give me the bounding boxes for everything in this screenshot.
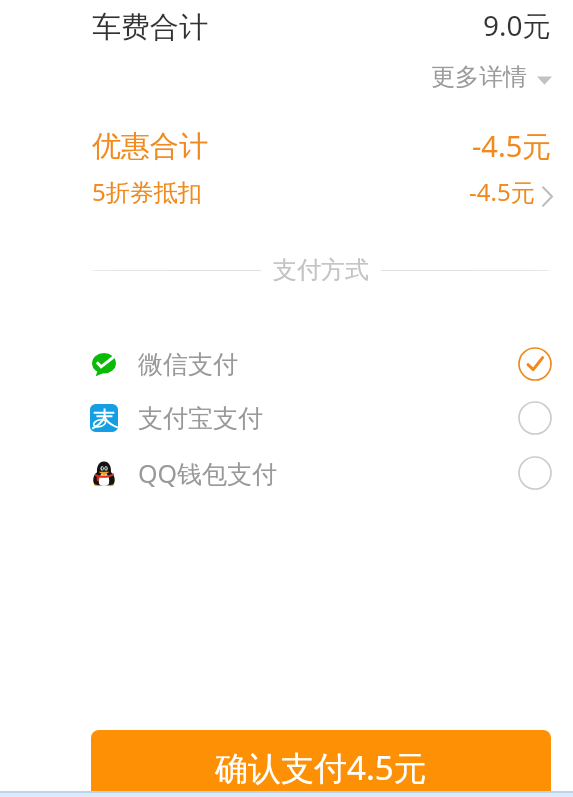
button[interactable]: QQ Wallet: [0, 446, 573, 500]
other: Not selected: [518, 456, 552, 490]
staticText: 支付方式: [273, 255, 369, 285]
staticText: 微信支付: [138, 349, 238, 380]
button[interactable]: 更多详情: [431, 58, 552, 96]
staticText: 确认支付4.5元: [215, 745, 427, 790]
staticText: 车费合计: [92, 9, 208, 46]
other: Alipay: [90, 404, 118, 432]
button[interactable]: Alipay: [0, 391, 573, 445]
staticText: QQ钱包支付: [138, 456, 278, 490]
other: Not selected: [518, 401, 552, 435]
staticText: 5折券抵扣: [92, 175, 202, 208]
button[interactable]: 5折券抵扣: [0, 172, 573, 212]
button[interactable]: 确认支付4.5元: [91, 730, 551, 797]
staticText: 9.0元: [483, 6, 551, 44]
staticText: 支付宝支付: [138, 403, 263, 434]
staticText: 优惠合计: [92, 128, 208, 165]
other: WeChat Pay: [90, 350, 118, 378]
staticText: 更多详情: [431, 62, 527, 92]
other: Selected: [518, 347, 552, 381]
staticText: -4.5元: [472, 126, 552, 166]
other: QQ Wallet: [90, 459, 118, 487]
staticText: -4.5元: [469, 175, 535, 208]
button[interactable]: WeChat Pay: [0, 337, 573, 391]
